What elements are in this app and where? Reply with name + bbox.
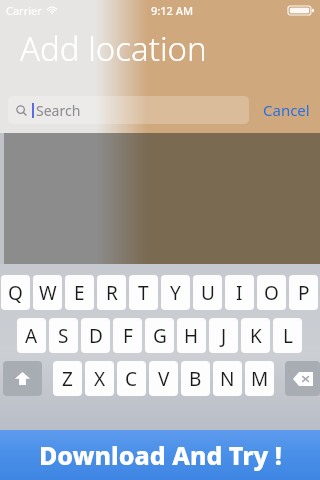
button[interactable]: G: [145, 318, 174, 353]
staticText: Search: [36, 101, 81, 120]
staticText: Cancel: [263, 100, 310, 120]
staticText: D: [89, 323, 103, 349]
button[interactable]: C: [117, 361, 146, 396]
staticText: M: [251, 366, 269, 392]
staticText: J: [221, 323, 227, 349]
button[interactable]: O: [257, 275, 286, 310]
staticText: I: [236, 280, 243, 306]
button[interactable]: J: [209, 318, 238, 353]
staticText: N: [220, 366, 235, 392]
button[interactable]: F: [113, 318, 142, 353]
staticText: H: [184, 323, 199, 349]
button[interactable]: B: [181, 361, 210, 396]
button[interactable]: V: [149, 361, 178, 396]
button[interactable]: D: [81, 318, 110, 353]
staticText: Download And Try !: [39, 438, 282, 472]
button[interactable]: N: [213, 361, 242, 396]
staticText: L: [283, 323, 293, 349]
staticText: A: [25, 323, 38, 349]
button[interactable]: U: [193, 275, 222, 310]
staticText: Add location: [20, 26, 207, 71]
button[interactable]: A: [17, 318, 46, 353]
staticText: 9:12 AM: [151, 3, 194, 18]
button[interactable]: Shift: [3, 361, 42, 396]
staticText: V: [158, 366, 170, 392]
button[interactable]: T: [129, 275, 158, 310]
button[interactable]: Download And Try !: [0, 430, 320, 480]
button[interactable]: M: [245, 361, 274, 396]
button[interactable]: I: [225, 275, 254, 310]
staticText: R: [106, 280, 118, 306]
staticText: B: [189, 366, 202, 392]
staticText: G: [153, 323, 167, 349]
button[interactable]: R: [97, 275, 126, 310]
staticText: K: [250, 323, 262, 349]
staticText: C: [125, 366, 138, 392]
staticText: T: [138, 280, 149, 306]
staticText: Carrier: [6, 3, 42, 18]
button[interactable]: X: [85, 361, 114, 396]
button[interactable]: S: [49, 318, 78, 353]
button[interactable]: P: [289, 275, 318, 310]
staticText: U: [201, 280, 215, 306]
button[interactable]: Search: [8, 96, 249, 124]
staticText: X: [94, 366, 106, 392]
button[interactable]: Cancel: [261, 96, 312, 124]
staticText: Y: [170, 280, 181, 306]
staticText: P: [298, 280, 310, 306]
staticText: S: [58, 323, 69, 349]
button[interactable]: Q: [1, 275, 30, 310]
button[interactable]: Delete: [285, 361, 320, 396]
button[interactable]: Z: [53, 361, 82, 396]
button[interactable]: L: [273, 318, 302, 353]
button[interactable]: Y: [161, 275, 190, 310]
staticText: F: [123, 323, 133, 349]
staticText: Q: [8, 280, 23, 306]
staticText: W: [39, 280, 57, 306]
button[interactable]: W: [33, 275, 62, 310]
button[interactable]: K: [241, 318, 270, 353]
staticText: E: [74, 280, 85, 306]
staticText: Z: [62, 366, 73, 392]
button[interactable]: E: [65, 275, 94, 310]
staticText: O: [264, 280, 279, 306]
button[interactable]: H: [177, 318, 206, 353]
